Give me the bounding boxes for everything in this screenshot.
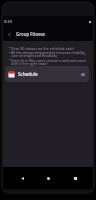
button[interactable]: Back: [3, 28, 16, 41]
staticText: Schedule: [18, 71, 38, 77]
staticText: 9:30: [4, 19, 12, 24]
staticText: All the classes designed to increase mob…: [11, 50, 86, 55]
button[interactable]: Home: [40, 170, 56, 186]
button[interactable]: Schedule: [5, 66, 89, 82]
staticText: Every first fifty users receive a welcom…: [11, 58, 87, 63]
staticText: All: [81, 72, 86, 77]
button[interactable]: Back: [14, 170, 30, 186]
staticText: Group Fitness: [16, 31, 45, 37]
button[interactable]: Recents: [67, 170, 83, 186]
staticText: core strength and flexibility: [11, 53, 58, 58]
staticText: Over 30 classes on the schedule each: [11, 46, 74, 51]
staticText: with a free gym towel: [11, 61, 48, 66]
